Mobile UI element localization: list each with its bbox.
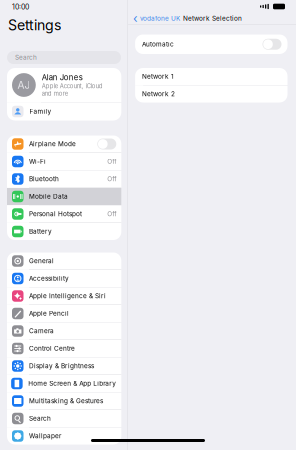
button[interactable]: Personal Hotspot [7, 205, 121, 222]
staticText: Search [15, 54, 37, 61]
staticText: Apple Pencil [29, 310, 69, 317]
staticText: ‹ [133, 11, 138, 26]
button[interactable]: Display & Brightness [7, 357, 121, 374]
button[interactable]: Wi-Fi [7, 153, 121, 170]
button[interactable]: Family [7, 102, 121, 120]
staticText: Apple Account, iCloud [42, 83, 103, 90]
button[interactable]: Apple Pencil [7, 305, 121, 322]
button[interactable]: Bluetooth [7, 170, 121, 187]
staticText: Search [29, 415, 51, 422]
button[interactable]: General [7, 252, 121, 269]
button[interactable]: Control Centre [7, 340, 121, 357]
staticText: AJ [17, 79, 30, 91]
staticText: Camera [29, 327, 54, 335]
staticText: vodafone UK [140, 15, 180, 22]
staticText: Display & Brightness [29, 362, 94, 370]
staticText: 10:00 [12, 3, 29, 11]
staticText: Airplane Mode [29, 140, 76, 148]
button[interactable]: ‹ [133, 11, 180, 26]
staticText: Automatic [142, 40, 174, 48]
staticText: General [29, 257, 54, 265]
button[interactable]: Mobile Data [7, 188, 121, 205]
staticText: Home Screen & App Library [28, 380, 116, 387]
staticText: Mobile Data [29, 193, 68, 200]
staticText: Network 2 [142, 90, 175, 98]
staticText: Personal Hotspot [29, 210, 82, 218]
staticText: Network Selection [183, 15, 242, 22]
button[interactable]: Network 1 [135, 68, 287, 85]
staticText: Alan Jones [42, 73, 83, 82]
staticText: Accessibility [29, 275, 69, 282]
button[interactable]: Accessibility [7, 270, 121, 287]
staticText: Off [107, 158, 116, 165]
button[interactable]: Battery [7, 223, 121, 240]
staticText: Network 1 [142, 73, 174, 80]
button[interactable]: Airplane Mode [7, 135, 121, 152]
staticText: Apple Intelligence & Siri [29, 292, 106, 300]
button[interactable]: Multitasking & Gestures [7, 392, 121, 409]
staticText: Wallpaper [29, 432, 61, 440]
button[interactable]: Automatic [135, 34, 287, 54]
staticText: Off [107, 175, 116, 183]
staticText: Wi-Fi [29, 158, 46, 165]
staticText: Battery [29, 228, 52, 235]
button[interactable]: Home Screen & App Library [6, 375, 122, 392]
staticText: and more [42, 90, 68, 97]
staticText: Settings [8, 16, 61, 33]
button[interactable]: AJ [7, 68, 121, 102]
button[interactable]: Search [7, 410, 121, 427]
staticText: Family [29, 108, 51, 115]
button[interactable]: Camera [7, 322, 121, 339]
staticText: Off [107, 210, 116, 218]
button[interactable]: Network 2 [135, 85, 287, 102]
button[interactable]: Apple Intelligence & Siri [7, 287, 121, 304]
staticText: Bluetooth [29, 175, 59, 183]
staticText: Multitasking & Gestures [29, 397, 103, 405]
button[interactable]: Wallpaper [7, 427, 121, 444]
staticText: Control Centre [29, 345, 75, 352]
